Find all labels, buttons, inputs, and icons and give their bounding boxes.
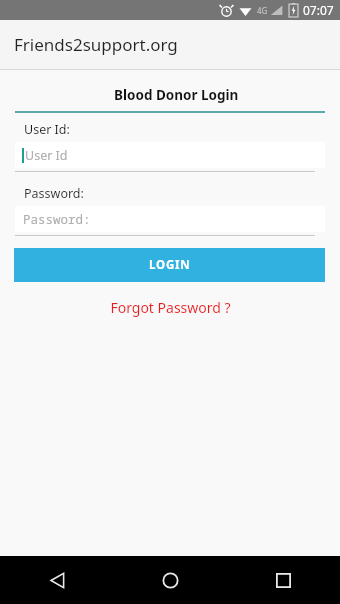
staticText: Password: (23, 211, 91, 228)
staticText: Password: (24, 185, 84, 202)
button[interactable]: User Id (15, 142, 325, 168)
button[interactable]: LOGIN (14, 248, 325, 282)
staticText: Friends2support.org (14, 33, 178, 56)
staticText: Blood Donor Login (114, 86, 239, 104)
staticText: User Id (25, 147, 68, 164)
staticText: LOGIN (149, 257, 191, 273)
button[interactable]: Back (0, 556, 114, 604)
button[interactable]: Password: (15, 206, 325, 232)
staticText: User Id: (24, 121, 70, 138)
staticText: 4G (257, 5, 268, 16)
button[interactable]: Home (114, 556, 227, 604)
button[interactable]: Forgot Password ? (102, 296, 239, 319)
staticText: 07:07 (303, 2, 334, 18)
button[interactable]: Recent apps (227, 556, 340, 604)
